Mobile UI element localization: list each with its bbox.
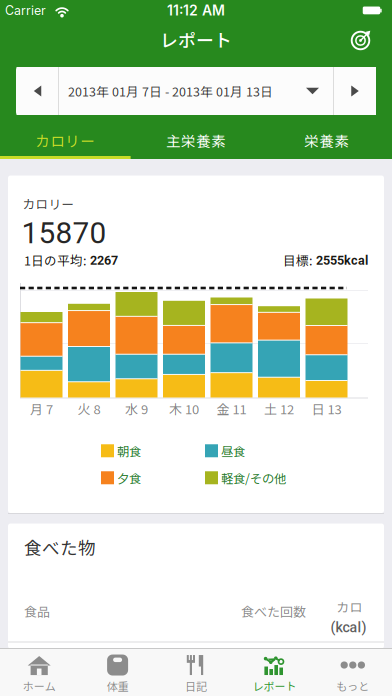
button[interactable]: ホーム [0,648,78,696]
staticText: レポート [252,678,296,694]
button[interactable]: 栄養素 [261,126,392,154]
staticText: (kcal) [330,619,366,636]
staticText: 食べた回数 [241,602,306,620]
staticText: 月 7 [30,399,53,418]
button[interactable]: カロリー [0,126,131,154]
staticText: 11:12 AM [167,2,225,19]
staticText: カロ [336,597,362,616]
staticText: 木 10 [169,399,199,418]
staticText: 2013年 01月 7日 - 2013年 01月 13日 [68,82,273,100]
staticText: 昼食 [221,442,245,460]
button[interactable]: レポート [235,648,314,696]
staticText: 夕食 [117,469,141,487]
staticText: 水 9 [125,399,148,418]
staticText: 火 8 [77,399,100,418]
staticText: カロリー [35,130,95,151]
staticText: カロリー [22,194,74,213]
staticText: 栄養素 [304,130,349,151]
button[interactable]: 主栄養素 [131,126,261,154]
staticText: 軽食/その他 [221,469,286,487]
button[interactable]: Goals [347,26,375,54]
staticText: 体重 [107,678,129,694]
staticText: 金 11 [216,399,246,418]
button[interactable]: 日記 [157,648,235,696]
button[interactable]: Previous week [16,67,58,115]
staticText: もっと [336,678,369,694]
staticText: レポート [160,26,232,52]
staticText: 日記 [185,678,207,694]
staticText: Carrier [5,3,46,18]
staticText: 目標: 2555kcal [283,251,368,269]
button[interactable]: Next week [334,67,376,115]
button[interactable]: 体重 [78,648,157,696]
staticText: 食べた物 [24,534,96,560]
staticText: 15870 [21,215,106,250]
staticText: 食品 [24,602,50,620]
button[interactable]: もっと [314,648,392,696]
staticText: 日 13 [311,399,341,418]
staticText: 朝食 [117,442,141,460]
staticText: ホーム [23,678,56,694]
button[interactable]: 2013年 01月 7日 - 2013年 01月 13日 [59,67,333,115]
staticText: 主栄養素 [166,130,226,151]
staticText: 土 12 [264,399,294,418]
staticText: 1日の平均: 2267 [24,251,118,269]
